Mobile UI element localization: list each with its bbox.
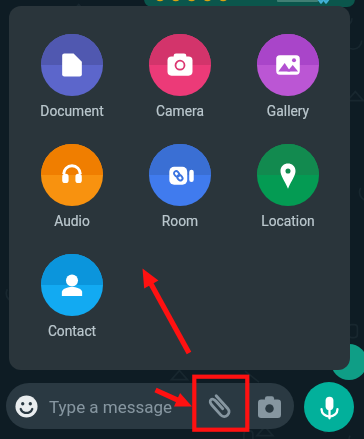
staticText: Gallery [246, 103, 330, 119]
staticText: Contact [30, 323, 114, 339]
button[interactable]: Document [30, 34, 114, 119]
button[interactable]: Location [246, 144, 330, 229]
staticText: Document [30, 103, 114, 119]
button[interactable]: Emoji [13, 393, 40, 420]
button[interactable]: Camera [244, 383, 294, 429]
button[interactable]: Audio [30, 144, 114, 229]
button[interactable]: Gallery [246, 34, 330, 119]
button[interactable]: Room [138, 144, 222, 229]
staticText: Camera [138, 103, 222, 119]
button[interactable]: Record voice message [304, 382, 354, 432]
button[interactable]: Emoji [6, 383, 294, 429]
button[interactable]: Attach file [194, 383, 244, 429]
staticText: Type a message [49, 397, 173, 417]
button[interactable]: Camera [138, 34, 222, 119]
staticText: Room [138, 213, 222, 229]
staticText: Audio [30, 213, 114, 229]
button[interactable]: Contact [30, 254, 114, 339]
staticText: Location [246, 213, 330, 229]
